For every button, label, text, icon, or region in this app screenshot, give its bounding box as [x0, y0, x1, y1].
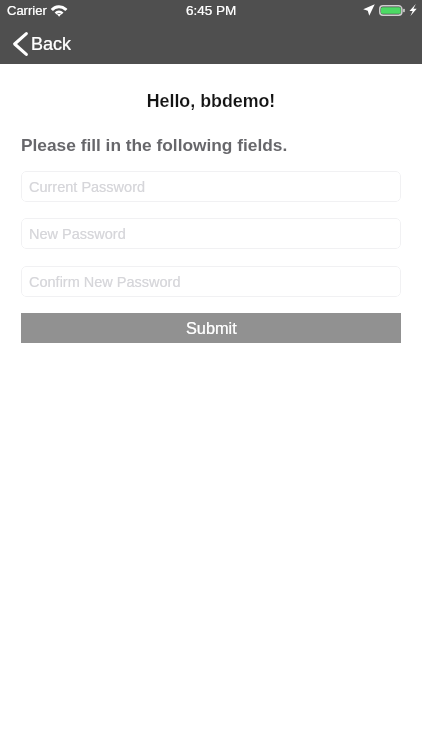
staticText: Back: [31, 34, 72, 54]
staticText: Current Password: [29, 179, 146, 195]
button[interactable]: Current Password: [21, 171, 401, 202]
staticText: Confirm New Password: [29, 274, 181, 290]
staticText: Carrier: [7, 3, 47, 18]
other: Wi-Fi: [51, 5, 68, 17]
staticText: 6:45 PM: [186, 3, 237, 18]
staticText: New Password: [29, 226, 126, 242]
button[interactable]: Submit: [21, 313, 401, 343]
staticText: Please fill in the following fields.: [21, 135, 288, 154]
staticText: Hello, bbdemo!: [0, 91, 422, 111]
other: Location: [363, 4, 375, 16]
button[interactable]: New Password: [21, 218, 401, 249]
button[interactable]: Back: [13, 32, 72, 56]
button[interactable]: Confirm New Password: [21, 266, 401, 297]
staticText: Submit: [186, 319, 237, 337]
